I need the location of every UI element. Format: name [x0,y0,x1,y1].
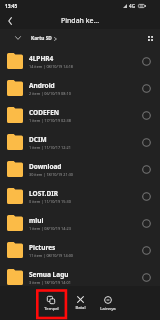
staticText: 1 item | 08/10/19 14:23 [29,226,71,231]
button[interactable]: Select miui [132,209,160,236]
button[interactable]: Select Pictures [132,236,160,263]
staticText: 13:45 [5,3,18,10]
staticText: Pindah ke... [61,16,100,26]
button[interactable]: Android [0,74,160,101]
staticText: LOST.DIR [29,189,58,198]
button[interactable]: Pictures [0,236,160,263]
staticText: 1 item | 11/10/17 12:21 [29,145,71,150]
button[interactable]: Tempel [38,296,64,312]
staticText: Batal [75,305,86,311]
button[interactable]: miui [0,209,160,236]
staticText: 30 item | 18/10/19 21:30 [29,172,73,177]
button[interactable]: Semua Lagu [0,263,160,290]
button[interactable]: Select 4LPHR4 [132,47,160,74]
staticText: Kartu SD [31,35,52,42]
staticText: 4LPHR4 [29,54,54,63]
button[interactable]: Back [0,12,20,29]
staticText: 14 item | 08/10/19 14:18 [29,64,73,69]
button[interactable]: Batal [67,296,93,311]
button[interactable]: LOST.DIR [0,182,160,209]
staticText: 1 item | 17/10/19 02:38 [29,118,71,123]
staticText: Lainnya [100,306,116,312]
button[interactable]: Kartu SD [31,31,57,46]
staticText: 3 item | 18/10/19 14:01 [29,280,71,285]
staticText: Android [29,81,55,90]
staticText: DCIM [29,135,47,144]
button[interactable]: CODEFEN [0,101,160,128]
staticText: miui [29,216,44,225]
button[interactable]: Select Download [132,155,160,182]
button[interactable]: 4LPHR4 [0,47,160,74]
button[interactable]: Select Android [132,74,160,101]
button[interactable]: Select CODEFEN [132,101,160,128]
staticText: 4G [129,3,135,9]
button[interactable]: Grid view [140,29,160,47]
button[interactable]: Select LOST.DIR [132,182,160,209]
button[interactable]: Lainnya [95,296,121,312]
staticText: 2 item | 06/10/19 08:10 [29,91,71,96]
staticText: 0 item | 11/10/19 15:30 [29,199,71,204]
staticText: Tempel [44,306,59,312]
staticText: Semua Lagu [29,270,69,279]
button[interactable]: Select Semua Lagu [132,263,160,290]
button[interactable]: Select DCIM [132,128,160,155]
staticText: Pictures [29,243,56,252]
button[interactable]: DCIM [0,128,160,155]
button[interactable]: Collapse path [5,29,31,47]
staticText: 11 item | 08/10/19 14:00 [29,253,73,258]
button[interactable]: Download [0,155,160,182]
staticText: CODEFEN [29,108,60,117]
staticText: Download [29,162,62,171]
